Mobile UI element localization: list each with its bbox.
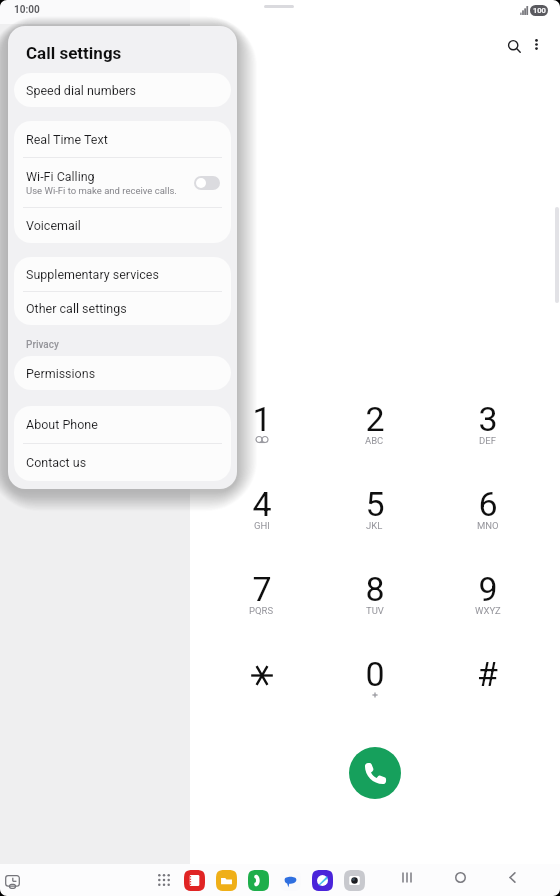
staticText: 6	[478, 484, 498, 524]
button[interactable]: Recent apps	[394, 865, 418, 889]
button[interactable]: More options	[519, 27, 554, 62]
staticText: ABC	[365, 435, 384, 446]
staticText: 8	[365, 569, 385, 609]
staticText: Real Time Text	[26, 132, 108, 147]
staticText: 1	[252, 399, 272, 439]
button[interactable]: Samsung Notes	[184, 870, 205, 891]
button[interactable]: Wi-Fi Calling	[14, 158, 231, 207]
button[interactable]: Key 7	[205, 569, 318, 654]
button[interactable]: Key #	[431, 654, 544, 739]
button[interactable]: About Phone	[14, 406, 231, 443]
staticText: Other call settings	[26, 301, 127, 316]
button[interactable]: Recent calls	[5, 875, 20, 891]
button[interactable]: Speed dial numbers	[14, 73, 231, 107]
staticText: TUV	[366, 605, 384, 616]
button[interactable]: Key *	[205, 654, 318, 739]
staticText: 0	[365, 654, 385, 694]
staticText: 7	[252, 569, 272, 609]
staticText: 2	[365, 399, 385, 439]
button[interactable]: Camera	[344, 870, 365, 891]
button[interactable]: Key 0	[318, 654, 431, 739]
button[interactable]: Phone	[248, 870, 269, 891]
button[interactable]: Key 4	[205, 484, 318, 569]
button[interactable]: Messages	[280, 870, 301, 891]
staticText: Permissions	[26, 366, 96, 381]
staticText: 100	[533, 6, 546, 15]
staticText: WXYZ	[475, 605, 501, 616]
staticText: PQRS	[249, 605, 274, 616]
staticText: #	[477, 654, 498, 694]
staticText: 9	[478, 569, 498, 609]
button[interactable]: Key 1	[205, 399, 318, 484]
staticText: Speed dial numbers	[26, 83, 136, 98]
button[interactable]: Permissions	[14, 356, 231, 390]
button[interactable]: Contact us	[14, 444, 231, 481]
staticText: GHI	[254, 520, 270, 531]
staticText: 4	[252, 484, 272, 524]
button[interactable]: Other call settings	[14, 292, 231, 325]
staticText: Use Wi-Fi to make and receive calls.	[26, 185, 177, 196]
staticText: 5	[365, 484, 385, 524]
button[interactable]: Real Time Text	[14, 121, 231, 157]
staticText: Supplementary services	[26, 267, 159, 282]
staticText: Privacy	[26, 339, 59, 351]
staticText: DEF	[479, 435, 496, 446]
staticText: 3	[478, 399, 498, 439]
staticText: About Phone	[26, 417, 98, 432]
staticText: Wi-Fi Calling	[26, 169, 95, 184]
button[interactable]: Key 8	[318, 569, 431, 654]
button[interactable]: Key 2	[318, 399, 431, 484]
staticText: JKL	[366, 520, 383, 531]
button[interactable]: Search	[496, 28, 532, 64]
button[interactable]: Key 3	[431, 399, 544, 484]
button[interactable]: Voicemail	[14, 208, 231, 243]
button[interactable]: Home	[448, 865, 472, 889]
button[interactable]: Key 6	[431, 484, 544, 569]
staticText: Call settings	[26, 43, 122, 63]
staticText: Voicemail	[26, 218, 81, 233]
button[interactable]: My Files	[216, 870, 237, 891]
button[interactable]: Call	[349, 747, 401, 799]
staticText: Contact us	[26, 455, 87, 470]
button[interactable]: Key 5	[318, 484, 431, 569]
staticText: MNO	[477, 520, 499, 531]
button[interactable]: All apps	[152, 868, 176, 892]
button[interactable]: Internet	[312, 870, 333, 891]
button[interactable]: Back	[500, 865, 524, 889]
staticText: 10:00	[14, 4, 40, 16]
button[interactable]: Key 9	[431, 569, 544, 654]
button[interactable]: Supplementary services	[14, 257, 231, 291]
